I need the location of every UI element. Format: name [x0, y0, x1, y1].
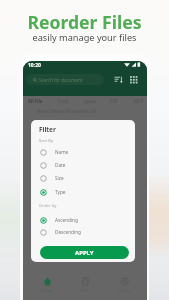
staticText: Date: [55, 162, 66, 168]
staticText: Filter: [39, 125, 56, 134]
staticText: Size: [55, 175, 64, 181]
button[interactable]: All File: [28, 98, 43, 104]
button[interactable]: Size: [40, 172, 130, 184]
staticText: Real Estate Statistics.xls: [37, 108, 98, 115]
staticText: 10:20: [28, 62, 41, 69]
staticText: Type: [55, 189, 66, 195]
button[interactable]: Home: [32, 277, 62, 293]
staticText: Reorder Files: [0, 10, 169, 34]
button[interactable]: Search for document: [26, 74, 104, 85]
button[interactable]: Date: [40, 159, 130, 171]
staticText: Search for document: [39, 77, 83, 83]
button[interactable]: PDF: [110, 98, 119, 104]
staticText: Home: [41, 288, 53, 293]
staticText: easily manage your files: [0, 31, 169, 44]
staticText: Ascending: [55, 217, 78, 223]
staticText: APPLY: [75, 249, 94, 257]
staticText: Sort By: [39, 138, 54, 144]
staticText: Order by: [39, 203, 57, 209]
button[interactable]: pptxx: [84, 98, 96, 104]
button[interactable]: Excel: [58, 98, 69, 104]
button[interactable]: Type: [40, 186, 130, 198]
button[interactable]: Sort: [114, 75, 123, 84]
button[interactable]: Settings: [109, 277, 139, 293]
button[interactable]: WXP: [134, 98, 144, 104]
staticText: Name: [55, 149, 69, 155]
button[interactable]: Grid view: [129, 75, 138, 84]
button[interactable]: Ascending: [40, 214, 130, 226]
button[interactable]: APPLY: [40, 246, 129, 259]
button[interactable]: Descending: [40, 226, 130, 238]
button[interactable]: Name: [40, 146, 130, 158]
staticText: Descending: [55, 229, 81, 235]
